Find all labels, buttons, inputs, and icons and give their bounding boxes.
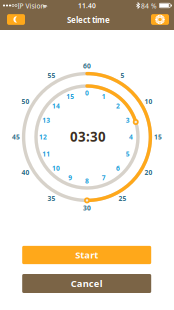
staticText: 11 bbox=[42, 149, 50, 158]
staticText: Cancel bbox=[71, 277, 103, 290]
staticText: Start bbox=[75, 249, 98, 261]
staticText: 1 bbox=[102, 92, 106, 101]
staticText: 15 bbox=[66, 92, 74, 101]
staticText: 15 bbox=[154, 133, 162, 141]
button[interactable]: Start bbox=[22, 246, 151, 264]
staticText: 6 bbox=[116, 164, 120, 173]
button[interactable]: Night mode bbox=[7, 14, 25, 25]
staticText: 20 bbox=[144, 168, 152, 177]
button[interactable]: Brightness bbox=[151, 14, 169, 25]
staticText: 8 bbox=[85, 177, 89, 185]
staticText: 5 bbox=[120, 71, 124, 80]
staticText: 40 bbox=[21, 168, 29, 177]
staticText: 12 bbox=[39, 133, 47, 141]
staticText: IP Vision bbox=[17, 1, 44, 10]
staticText: 7 bbox=[102, 173, 106, 182]
staticText: 50 bbox=[21, 97, 29, 106]
staticText: Select time bbox=[67, 15, 110, 25]
staticText: 10 bbox=[144, 97, 152, 106]
staticText: 25 bbox=[118, 194, 126, 203]
staticText: 84 % bbox=[141, 1, 157, 10]
staticText: 5 bbox=[126, 149, 130, 158]
staticText: 30 bbox=[83, 204, 91, 212]
staticText: 2 bbox=[116, 101, 120, 110]
staticText: 03:30 bbox=[70, 128, 106, 145]
button[interactable]: Cancel bbox=[22, 274, 151, 293]
staticText: 35 bbox=[47, 194, 55, 203]
staticText: 55 bbox=[47, 71, 55, 80]
staticText: 11.40 bbox=[78, 1, 96, 10]
staticText: 9 bbox=[68, 173, 72, 182]
staticText: 3 bbox=[126, 116, 130, 125]
staticText: 60 bbox=[83, 62, 91, 70]
staticText: 10 bbox=[52, 164, 60, 173]
staticText: 45 bbox=[12, 133, 20, 141]
staticText: 4 bbox=[129, 133, 133, 141]
staticText: 0 bbox=[85, 89, 89, 97]
staticText: 14 bbox=[52, 101, 60, 110]
staticText: 13 bbox=[42, 116, 50, 125]
